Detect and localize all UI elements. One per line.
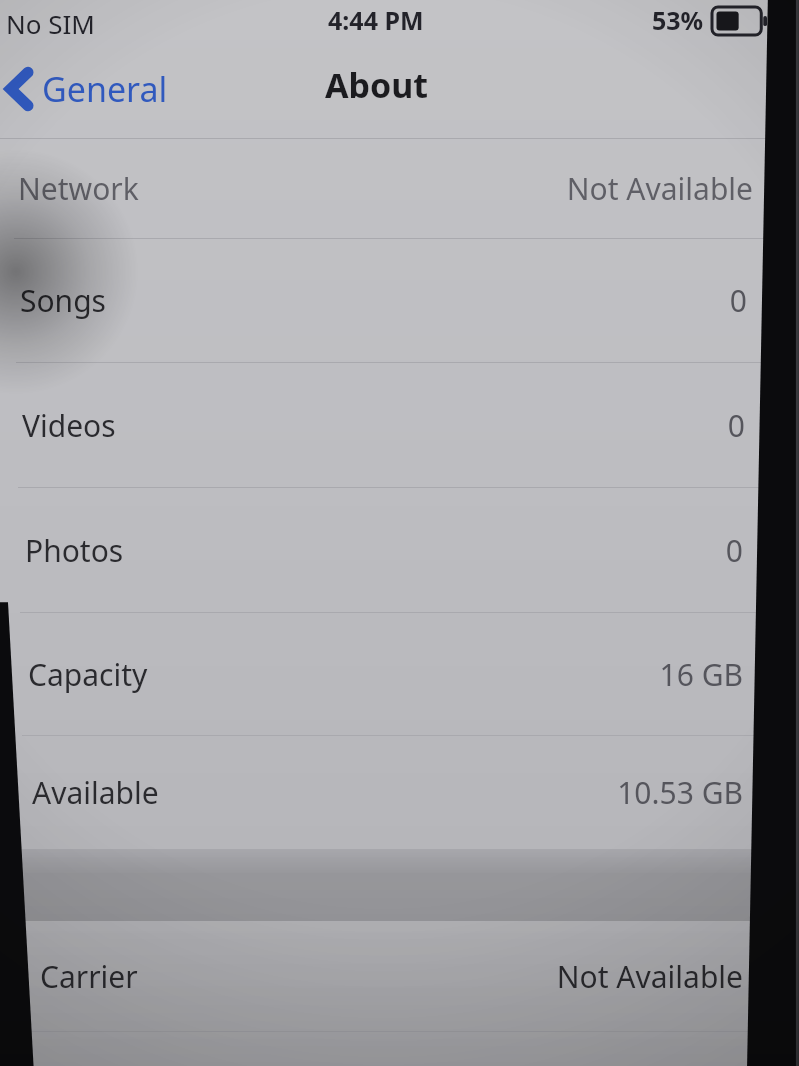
button[interactable]: Songs bbox=[0, 239, 799, 362]
staticText: 0 bbox=[729, 280, 747, 321]
staticText: Capacity bbox=[28, 654, 148, 695]
staticText: Not Available bbox=[566, 168, 753, 209]
staticText: Available bbox=[32, 772, 159, 813]
staticText: 4:44 PM bbox=[328, 3, 424, 37]
staticText: 0 bbox=[725, 530, 743, 571]
button[interactable]: Network bbox=[0, 139, 799, 238]
staticText: 53% bbox=[652, 3, 704, 37]
staticText: General bbox=[42, 66, 168, 112]
staticText: 10.53 GB bbox=[617, 772, 743, 813]
staticText: Videos bbox=[22, 405, 116, 446]
button[interactable]: Capacity bbox=[0, 613, 799, 735]
staticText: 0 bbox=[727, 405, 745, 446]
staticText: Network bbox=[18, 168, 139, 209]
staticText: About bbox=[325, 62, 429, 108]
staticText: 16 GB bbox=[659, 654, 743, 695]
button[interactable]: Photos bbox=[0, 488, 799, 612]
button[interactable]: Available bbox=[0, 736, 799, 849]
staticText: Songs bbox=[20, 280, 106, 321]
staticText: No SIM bbox=[6, 6, 95, 41]
button[interactable]: Videos bbox=[0, 363, 799, 487]
staticText: Carrier bbox=[40, 956, 138, 997]
button[interactable]: Back to General bbox=[4, 56, 168, 122]
button[interactable]: Carrier bbox=[0, 921, 799, 1031]
staticText: Not Available bbox=[556, 956, 743, 997]
staticText: Photos bbox=[25, 530, 124, 571]
